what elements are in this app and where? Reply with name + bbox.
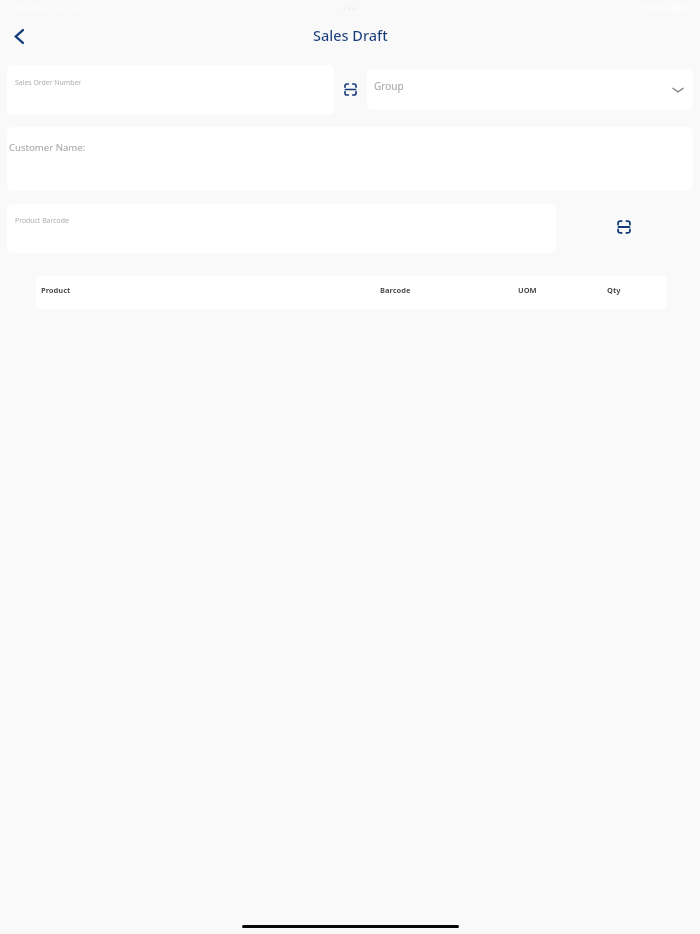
button[interactable]: Customer Name: — [7, 127, 693, 191]
staticText: Sales Order Number — [15, 78, 82, 87]
button[interactable]: Back — [4, 21, 34, 51]
staticText: UOM — [518, 285, 537, 295]
button[interactable]: Product Barcode — [7, 204, 556, 253]
staticText: Product — [41, 285, 71, 295]
button[interactable]: Scan sales order barcode — [336, 75, 364, 103]
button[interactable]: Scan product barcode — [610, 213, 638, 241]
staticText: Barcode — [380, 285, 411, 295]
button[interactable]: Sales Order Number — [7, 65, 334, 115]
staticText: Customer Name: — [9, 141, 86, 154]
staticText: Qty — [607, 285, 621, 295]
button[interactable]: Group — [367, 69, 693, 110]
staticText: Group — [374, 79, 404, 93]
staticText: Sales Draft — [313, 25, 388, 45]
staticText: Product Barcode — [15, 216, 69, 225]
